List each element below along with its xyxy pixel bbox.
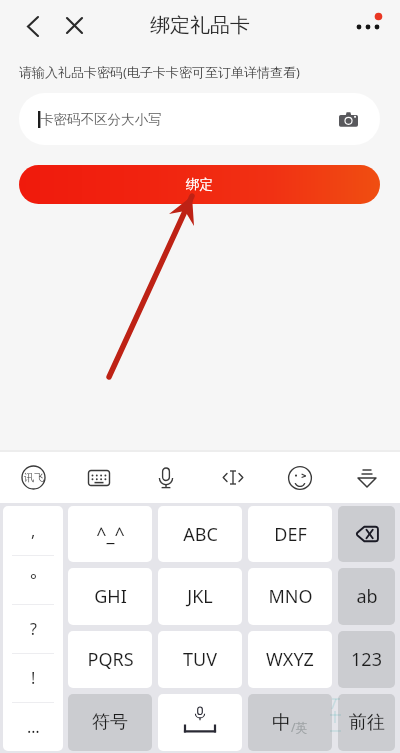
staticText: ?	[30, 618, 37, 640]
button[interactable]: 前往	[338, 694, 395, 751]
staticText: 符号	[92, 711, 128, 734]
staticText: ABC	[183, 522, 218, 547]
button[interactable]: 绑定	[19, 165, 380, 204]
button[interactable]: GHI	[68, 568, 152, 625]
button[interactable]: 中	[248, 694, 332, 751]
button[interactable]: ABC	[158, 506, 242, 562]
staticText: !	[31, 667, 36, 689]
staticText: 中	[272, 711, 291, 735]
button[interactable]: ,	[3, 506, 63, 751]
button[interactable]: WXYZ	[248, 631, 332, 688]
button[interactable]: 符号	[68, 694, 152, 751]
staticText: JKL	[187, 584, 213, 609]
button[interactable]: PQRS	[68, 631, 152, 688]
button[interactable]: Keyboard layout	[66, 452, 132, 503]
staticText: 卡密码不区分大小写	[40, 111, 162, 128]
button[interactable]: 123	[338, 631, 395, 688]
button[interactable]: Back	[18, 11, 48, 41]
button[interactable]: Input method	[0, 452, 66, 503]
staticText: TUV	[183, 647, 217, 672]
staticText: 讯飞	[24, 471, 44, 484]
staticText: MNO	[268, 584, 313, 609]
button[interactable]: Scan gift card	[339, 110, 358, 129]
staticText: …	[27, 716, 40, 738]
button[interactable]: 卡密码不区分大小写	[19, 93, 380, 145]
staticText: 绑定礼品卡	[150, 13, 250, 38]
button[interactable]: ^_^	[68, 506, 152, 562]
button[interactable]: Space	[158, 694, 242, 751]
staticText: GHI	[94, 584, 127, 609]
button[interactable]: Emoji	[266, 452, 333, 503]
button[interactable]: ab	[338, 568, 395, 625]
staticText: ,	[31, 520, 36, 542]
staticText: ^_^	[96, 522, 125, 547]
button[interactable]: Move cursor	[199, 452, 266, 503]
button[interactable]: JKL	[158, 568, 242, 625]
staticText: PQRS	[87, 647, 134, 672]
button[interactable]: MNO	[248, 568, 332, 625]
other: Delete	[354, 521, 380, 547]
staticText: 前往	[349, 711, 385, 734]
button[interactable]: Close	[58, 11, 88, 41]
staticText: ab	[356, 584, 378, 609]
button[interactable]: Delete	[338, 506, 395, 562]
button[interactable]: TUV	[158, 631, 242, 688]
staticText: 绑定	[186, 176, 213, 193]
staticText: 请输入礼品卡密码(电子卡卡密可至订单详情查看)	[19, 63, 300, 81]
button[interactable]: Hide keyboard	[333, 452, 400, 503]
other: Space	[173, 696, 227, 750]
button[interactable]: DEF	[248, 506, 332, 562]
staticText: 123	[351, 647, 382, 672]
staticText: WXYZ	[266, 647, 314, 672]
staticText: °	[30, 569, 37, 591]
staticText: DEF	[274, 522, 307, 547]
button[interactable]: Voice input	[132, 452, 199, 503]
staticText: /英	[291, 719, 308, 735]
button[interactable]: More options	[351, 8, 391, 48]
